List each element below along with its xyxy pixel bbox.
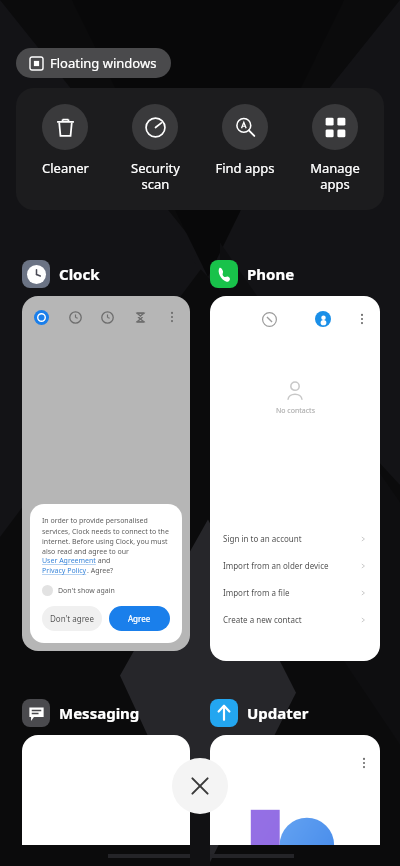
staticText: In order to provide personalised service… [42,516,170,556]
staticText: Floating windows [50,54,157,72]
staticText: Messaging [59,703,140,723]
button[interactable]: Cleaner [24,88,106,210]
staticText: Updater [247,703,309,723]
button[interactable]: Don't show again [42,585,115,596]
button[interactable]: Agree [109,606,170,631]
staticText: No contacts [276,406,315,416]
staticText: Agree [128,613,151,624]
button[interactable]: Messaging [22,699,140,727]
staticText: and [96,556,111,566]
button[interactable]: In order to provide personalised service… [22,296,190,651]
button[interactable] [210,735,380,845]
button[interactable]: Close all [172,758,228,814]
staticText: Cleaner [42,159,89,177]
button[interactable]: Floating windows [16,48,171,78]
button[interactable]: Updater [210,699,309,727]
button[interactable]: Don't agree [42,606,102,631]
button[interactable]: Create a new contact [223,606,367,633]
staticText: Clock [59,264,100,284]
button[interactable]: Manage apps [294,88,376,210]
button[interactable]: Import from a file [223,579,367,606]
staticText: User Agreement [42,556,96,566]
staticText: Manage apps [310,159,360,192]
button[interactable]: Clock [22,260,100,288]
staticText: Security scan [131,159,180,192]
button[interactable]: Find apps [204,88,286,210]
staticText: Don't show again [58,586,115,596]
button[interactable]: Phone [210,260,295,288]
staticText: Create a new contact [223,614,302,625]
staticText: Import from an older device [223,560,329,571]
staticText: Sign in to an account [223,533,302,544]
staticText: Don't agree [50,613,94,624]
button[interactable]: Import from an older device [223,552,367,579]
staticText: Phone [247,264,295,284]
button[interactable]: No contacts [210,296,380,661]
staticText: Privacy Policy [42,566,87,576]
button[interactable]: Sign in to an account [223,525,367,552]
button[interactable] [22,735,190,845]
staticText: Find apps [215,159,275,177]
staticText: . Agree? [87,566,114,576]
button[interactable]: Security scan [114,88,196,210]
staticText: Import from a file [223,587,290,598]
